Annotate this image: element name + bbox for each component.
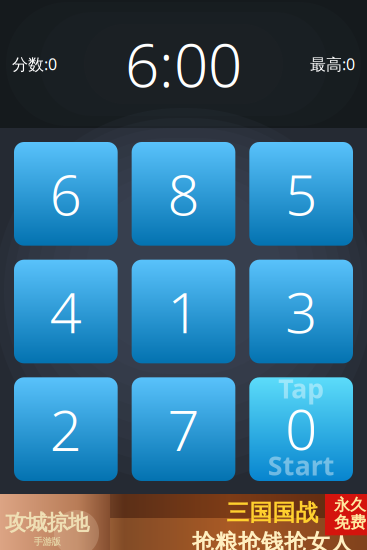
staticText: 抢粮抢钱抢女人 (192, 528, 353, 550)
staticText: 手游版 (33, 536, 60, 547)
button[interactable]: 8 (132, 142, 235, 246)
button[interactable]: 6 (14, 142, 118, 246)
button[interactable]: 7 (132, 377, 235, 481)
button[interactable]: Tap (249, 377, 353, 481)
button[interactable]: 2 (14, 377, 118, 481)
button[interactable]: 5 (249, 142, 353, 246)
staticText: 7 (167, 392, 199, 466)
staticText: 1 (167, 274, 199, 349)
staticText: 4 (50, 274, 82, 349)
staticText: 2 (50, 392, 82, 466)
staticText: 最高:0 (310, 53, 355, 75)
staticText: 6 (50, 157, 82, 231)
staticText: 永久 (334, 495, 366, 515)
staticText: Start (268, 447, 335, 483)
button[interactable]: 4 (14, 260, 118, 363)
button[interactable]: Advertisement: 攻城掠地 (0, 494, 367, 550)
staticText: 5 (285, 157, 317, 231)
button[interactable]: 1 (132, 260, 235, 363)
staticText: 免费 (334, 513, 366, 532)
staticText: 6:00 (125, 24, 242, 104)
staticText: 攻城掠地 (5, 510, 89, 536)
staticText: 3 (285, 274, 317, 349)
staticText: Tap (278, 370, 324, 406)
staticText: 三国国战 (226, 499, 318, 526)
staticText: 8 (167, 157, 199, 231)
button[interactable]: 3 (249, 260, 353, 363)
staticText: 分数:0 (12, 53, 57, 75)
staticText: 0 (285, 391, 317, 465)
